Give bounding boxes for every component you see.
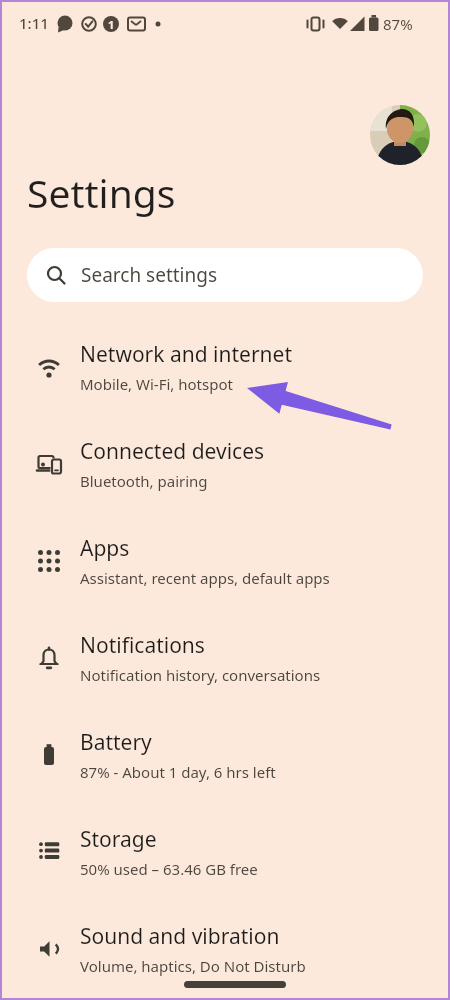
staticText: Notifications bbox=[80, 631, 205, 660]
button[interactable]: Apps bbox=[0, 512, 450, 609]
button[interactable] bbox=[370, 105, 430, 165]
button[interactable]: Battery bbox=[0, 706, 450, 803]
staticText: 50% used – 63.46 GB free bbox=[80, 859, 258, 879]
staticText: Storage bbox=[80, 825, 157, 854]
staticText: 87% - About 1 day, 6 hrs left bbox=[80, 762, 276, 782]
staticText: Notification history, conversations bbox=[80, 665, 321, 685]
button[interactable]: Network and internet bbox=[0, 318, 450, 415]
staticText: Bluetooth, pairing bbox=[80, 471, 208, 491]
button[interactable]: Sound and vibration bbox=[0, 900, 450, 997]
staticText: Network and internet bbox=[80, 340, 292, 369]
staticText: Volume, haptics, Do Not Disturb bbox=[80, 956, 306, 976]
button[interactable]: Storage bbox=[0, 803, 450, 900]
staticText: Sound and vibration bbox=[80, 922, 280, 951]
button[interactable]: Notifications bbox=[0, 609, 450, 706]
staticText: Search settings bbox=[81, 262, 218, 288]
staticText: 1 bbox=[108, 17, 115, 32]
staticText: Settings bbox=[27, 166, 176, 219]
staticText: Battery bbox=[80, 728, 152, 757]
staticText: 87% bbox=[383, 14, 413, 34]
staticText: Connected devices bbox=[80, 437, 265, 466]
button[interactable]: Search settings bbox=[27, 248, 423, 302]
staticText: 1:11 bbox=[19, 13, 49, 33]
staticText: Assistant, recent apps, default apps bbox=[80, 568, 330, 588]
staticText: Mobile, Wi-Fi, hotspot bbox=[80, 374, 233, 394]
button[interactable]: Connected devices bbox=[0, 415, 450, 512]
staticText: Apps bbox=[80, 534, 130, 563]
